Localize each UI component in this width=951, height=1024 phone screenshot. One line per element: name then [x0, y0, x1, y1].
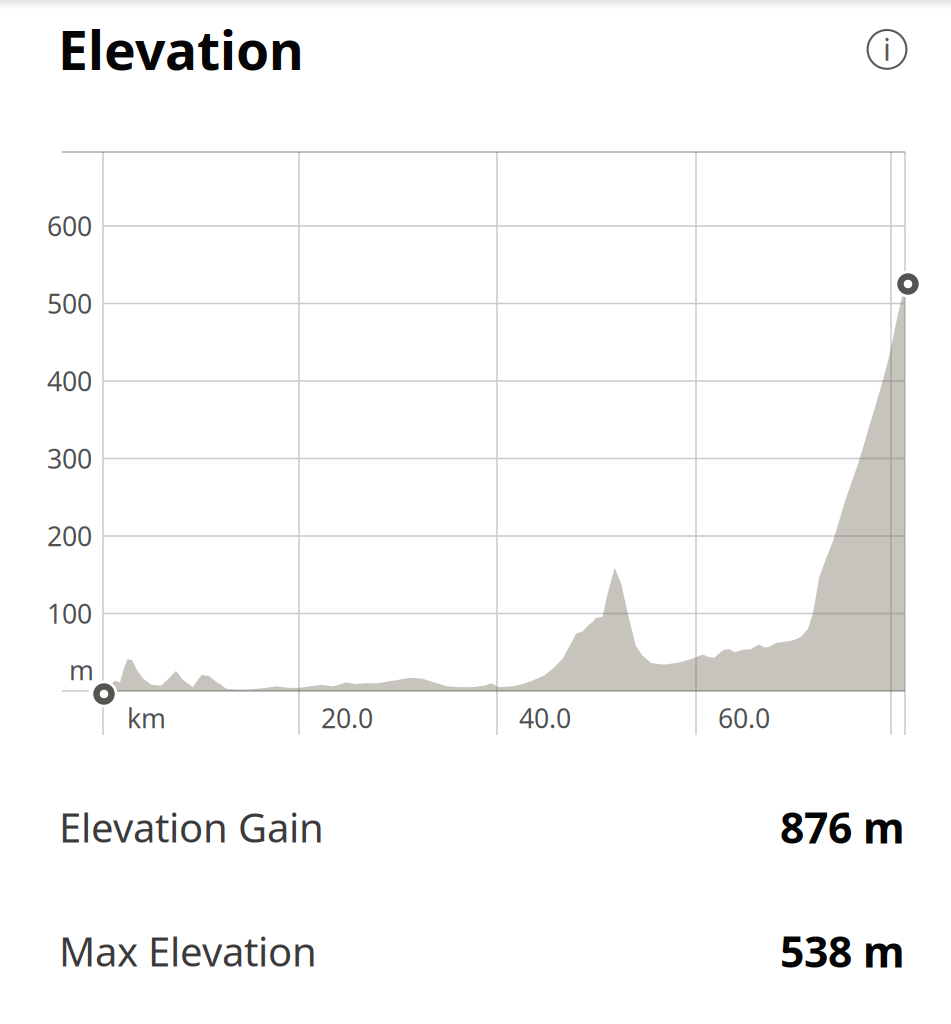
staticText: i — [883, 28, 891, 69]
staticText: 400 — [47, 363, 92, 399]
staticText: 20.0 — [321, 700, 373, 736]
staticText: 60.0 — [718, 700, 770, 736]
staticText: m — [69, 652, 94, 688]
staticText: 300 — [47, 441, 92, 476]
staticText: 600 — [47, 208, 92, 244]
staticText: km — [127, 700, 166, 736]
staticText: 40.0 — [519, 700, 571, 736]
staticText: Elevation Gain — [59, 800, 324, 853]
staticText: 538 m — [780, 923, 905, 979]
button[interactable]: Info — [855, 17, 919, 81]
staticText: 200 — [47, 518, 92, 554]
staticText: 100 — [47, 596, 92, 631]
staticText: Elevation — [58, 14, 304, 85]
staticText: Max Elevation — [59, 924, 317, 977]
staticText: 876 m — [780, 799, 905, 855]
staticText: 500 — [47, 286, 92, 321]
